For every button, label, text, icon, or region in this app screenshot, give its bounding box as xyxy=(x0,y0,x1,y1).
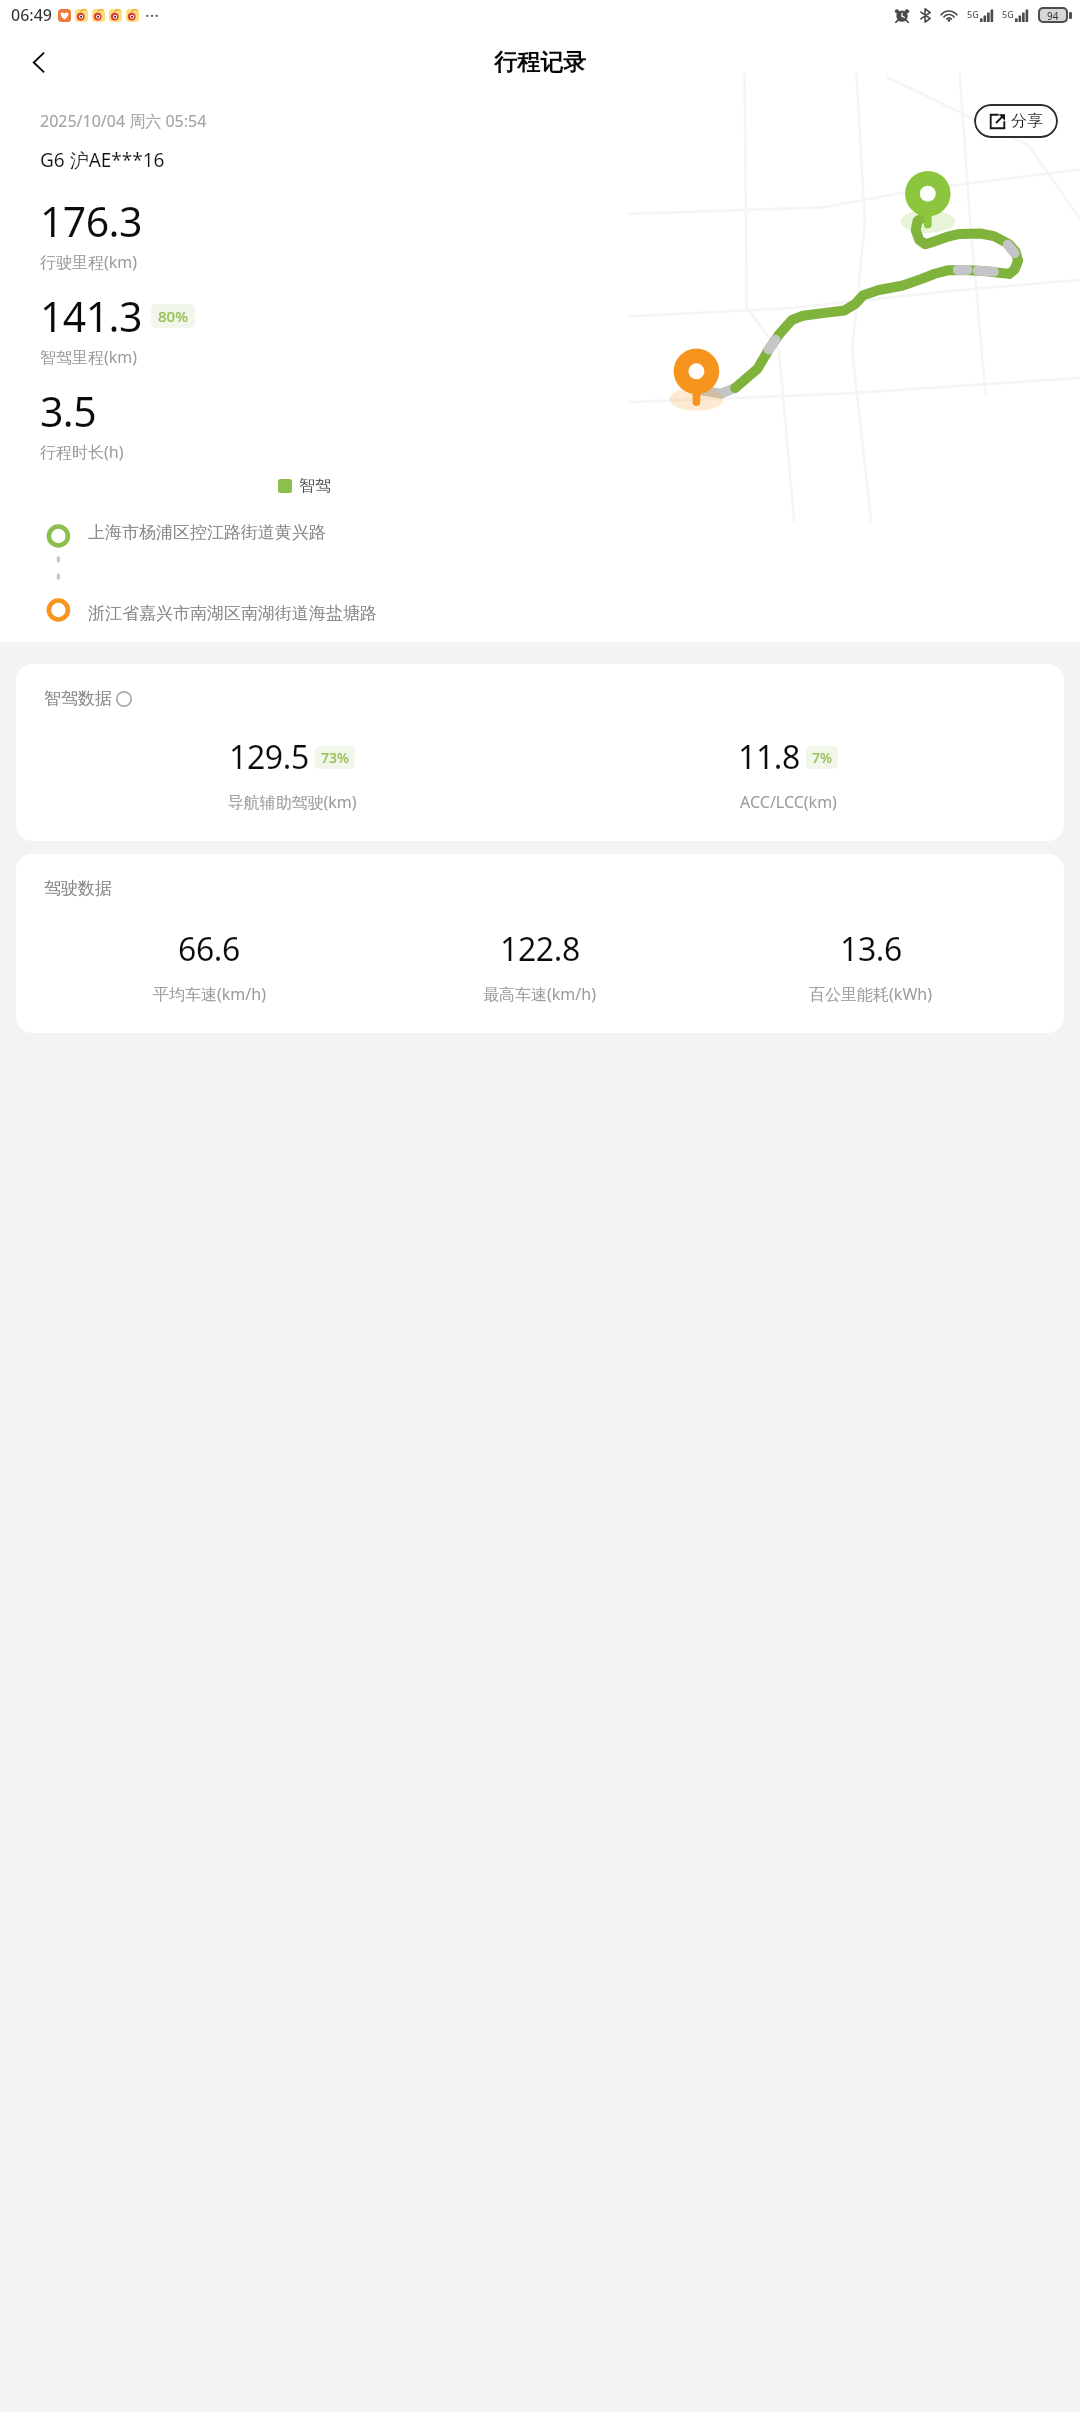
staticText: 13.6 xyxy=(840,927,902,971)
staticText: 5G xyxy=(967,8,979,20)
staticText: 141.3 xyxy=(40,288,142,344)
staticText: 智驾里程(km) xyxy=(40,346,138,368)
staticText: 百公里能耗(kWh) xyxy=(809,983,932,1005)
staticText: 3.5 xyxy=(40,383,97,439)
staticText: 最高车速(km/h) xyxy=(483,983,596,1005)
staticText: G6 沪AE***16 xyxy=(40,147,165,173)
staticText: 驾驶数据 xyxy=(44,878,112,899)
staticText: 5G xyxy=(1002,8,1014,20)
staticText: 行驶里程(km) xyxy=(40,251,138,273)
staticText: ACC/LCC(km) xyxy=(740,791,837,813)
staticText: 11.8 xyxy=(738,735,800,779)
staticText: 66.6 xyxy=(178,927,240,971)
staticText: 智驾数据 xyxy=(44,688,112,709)
staticText: 导航辅助驾驶(km) xyxy=(227,791,357,813)
button[interactable]: 返回 xyxy=(16,39,62,85)
staticText: 7% xyxy=(812,748,832,767)
staticText: 73% xyxy=(321,748,349,767)
button[interactable]: 智驾数据 xyxy=(16,664,1064,841)
staticText: 94 xyxy=(1047,9,1059,21)
staticText: 浙江省嘉兴市南湖区南湖街道海盐塘路 xyxy=(88,603,377,624)
staticText: 上海市杨浦区控江路街道黄兴路 xyxy=(88,522,326,543)
staticText: 2025/10/04 周六 05:54 xyxy=(40,110,207,132)
staticText: 80% xyxy=(158,306,188,326)
staticText: 平均车速(km/h) xyxy=(153,983,266,1005)
staticText: 176.3 xyxy=(40,193,142,249)
staticText: 122.8 xyxy=(500,927,580,971)
staticText: 分享 xyxy=(1011,111,1043,131)
staticText: 129.5 xyxy=(229,735,309,779)
staticText: 行程记录 xyxy=(494,48,586,77)
button[interactable]: 驾驶数据 xyxy=(16,854,1064,1033)
staticText: 行程时长(h) xyxy=(40,441,124,463)
button[interactable]: 分享 xyxy=(974,104,1058,138)
staticText: 智驾 xyxy=(299,476,331,496)
staticText: 06:49 xyxy=(11,4,52,26)
